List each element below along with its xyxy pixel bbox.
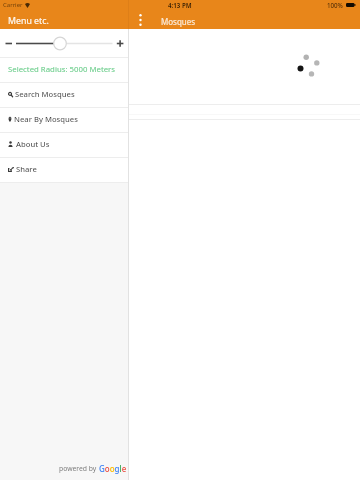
staticText: 100%: [327, 1, 343, 9]
staticText: Near By Mosques: [14, 114, 78, 124]
button[interactable]: Search radius slider: [0, 29, 128, 57]
staticText: Mosques: [161, 16, 196, 27]
staticText: Google: [99, 463, 127, 474]
button[interactable]: Share: [0, 158, 128, 182]
button[interactable]: Search Mosques: [0, 83, 128, 107]
staticText: Menu etc.: [8, 15, 49, 27]
staticText: 4:13 PM: [168, 1, 192, 9]
staticText: Carrier: [3, 1, 23, 9]
button[interactable]: Near By Mosques: [0, 108, 128, 132]
button[interactable]: More options: [133, 12, 147, 28]
button[interactable]: About Us: [0, 133, 128, 157]
staticText: powered by: [59, 464, 99, 473]
staticText: About Us: [16, 139, 50, 149]
staticText: Share: [16, 164, 37, 174]
staticText: Selected Radius: 5000 Meters: [8, 64, 116, 75]
staticText: Search Mosques: [15, 89, 75, 99]
